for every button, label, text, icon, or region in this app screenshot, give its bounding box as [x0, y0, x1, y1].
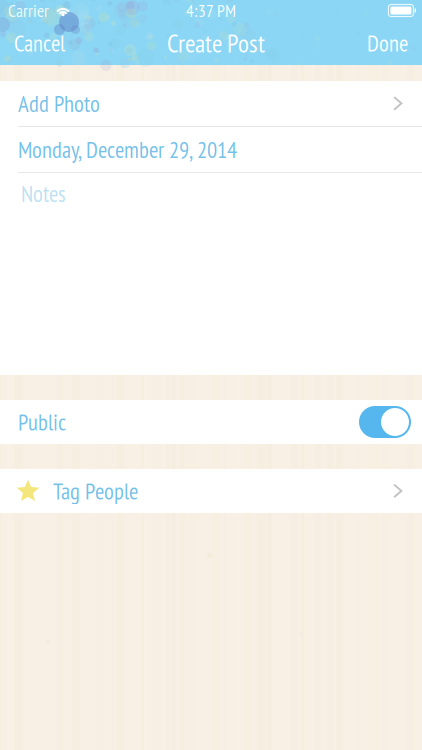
staticText: Public [18, 407, 66, 437]
button[interactable]: Done [355, 21, 422, 65]
staticText: Cancel [14, 28, 65, 58]
button[interactable]: Cancel [0, 21, 77, 65]
button[interactable]: Notes [0, 173, 422, 375]
staticText: Carrier [8, 0, 49, 22]
button[interactable]: Monday, December 29, 2014 [0, 127, 422, 172]
staticText: Create Post [167, 27, 265, 59]
button[interactable]: Public [0, 400, 422, 444]
button[interactable]: Tag People [0, 469, 422, 513]
staticText: Notes [21, 179, 66, 208]
staticText: Done [367, 28, 408, 58]
button[interactable]: Add Photo [0, 81, 422, 126]
staticText: Add Photo [18, 89, 100, 118]
staticText: 4:37 PM [186, 0, 236, 22]
staticText: Tag People [53, 476, 138, 506]
staticText: Monday, December 29, 2014 [18, 135, 237, 164]
